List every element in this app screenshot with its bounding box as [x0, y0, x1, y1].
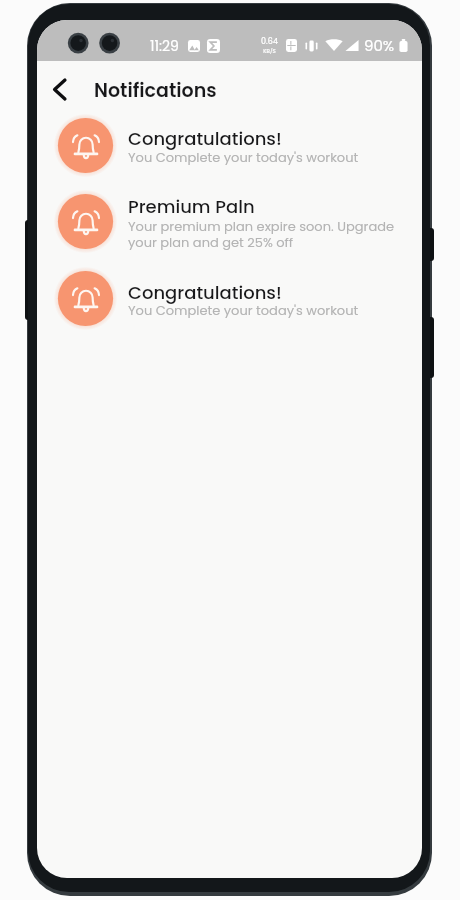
staticText: KB/S: [263, 47, 276, 55]
staticText: Notifications: [94, 77, 217, 104]
staticText: 0.64: [261, 36, 278, 47]
button[interactable]: Congratulations!: [37, 265, 422, 333]
staticText: Congratulations!: [128, 280, 282, 305]
button[interactable]: Back: [43, 73, 75, 105]
staticText: Your premium plan expire soon. Upgrade y…: [128, 217, 408, 251]
staticText: 90%: [364, 35, 395, 56]
staticText: You Complete your today's workout: [128, 301, 408, 319]
staticText: 11:29: [150, 36, 179, 56]
button[interactable]: Premium Paln: [37, 188, 422, 256]
staticText: You Complete your today's workout: [128, 148, 408, 166]
staticText: Congratulations!: [128, 126, 282, 151]
button[interactable]: Congratulations!: [37, 112, 422, 180]
staticText: Premium Paln: [128, 194, 255, 219]
